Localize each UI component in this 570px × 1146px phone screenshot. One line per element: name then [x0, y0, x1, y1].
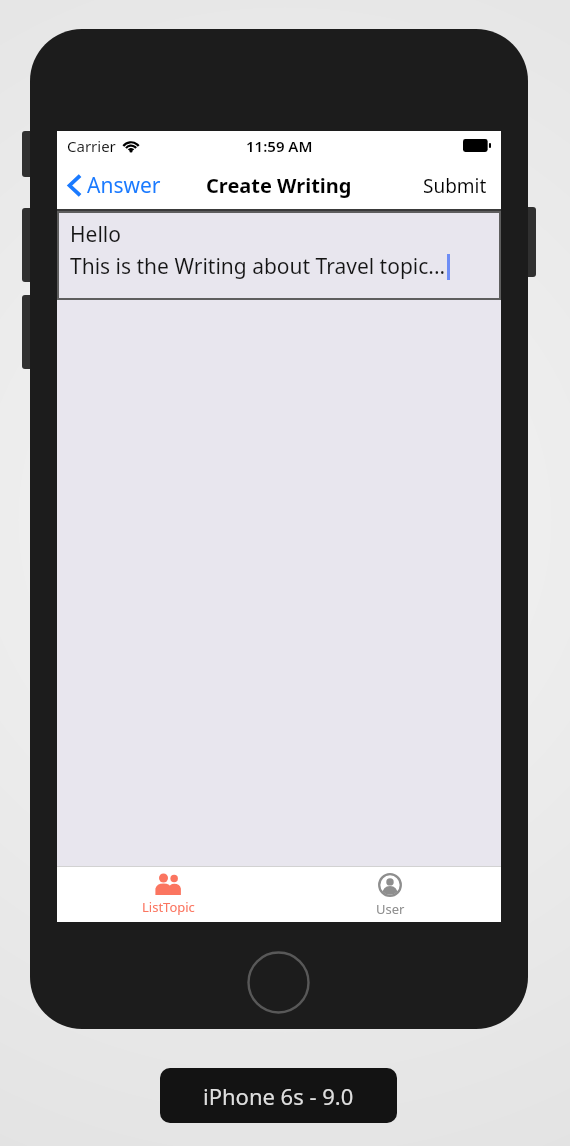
staticText: Create Writing: [206, 172, 352, 199]
staticText: Hello: [70, 220, 121, 249]
staticText: 11:59 AM: [246, 136, 313, 156]
other: Wi-Fi signal: [122, 140, 140, 153]
staticText: User: [376, 900, 405, 918]
staticText: Submit: [423, 173, 487, 199]
button[interactable]: Hello: [59, 213, 499, 298]
button[interactable]: User: [279, 867, 501, 922]
button[interactable]: ListTopic: [57, 867, 279, 922]
staticText: iPhone 6s - 9.0: [203, 1081, 354, 1111]
other: Battery full: [463, 139, 491, 152]
staticText: Answer: [87, 171, 161, 200]
staticText: ListTopic: [142, 898, 195, 916]
button[interactable]: Answer: [57, 160, 173, 211]
button[interactable]: Submit: [409, 160, 501, 211]
staticText: This is the Writing about Travel topic..…: [70, 252, 446, 281]
staticText: Carrier: [67, 136, 116, 156]
